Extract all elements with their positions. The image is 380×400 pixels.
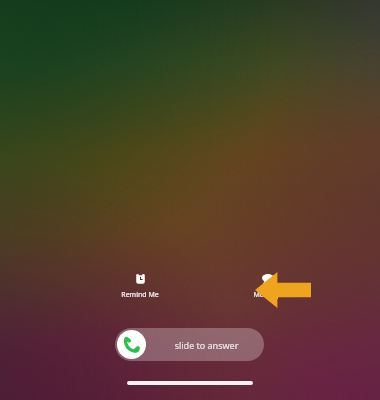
button[interactable]: Message [232, 272, 304, 300]
staticText: Message [253, 290, 283, 300]
staticText: Remind Me [121, 290, 159, 300]
button[interactable]: Answer call [117, 330, 146, 359]
button[interactable]: Remind Me [104, 272, 176, 300]
button[interactable]: slide to answer [115, 328, 264, 361]
staticText: slide to answer [149, 339, 264, 351]
